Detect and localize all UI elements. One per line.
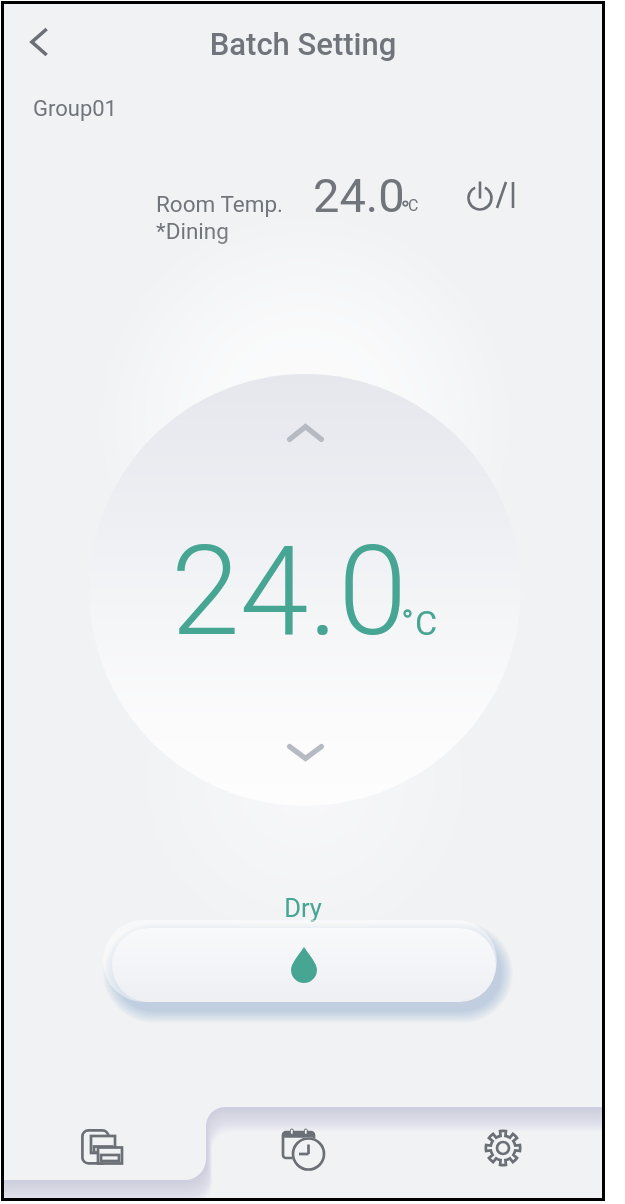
staticText: Group01: [33, 96, 117, 122]
button[interactable]: Devices: [4, 1098, 206, 1198]
staticText: Dry: [4, 893, 602, 923]
button[interactable]: Power on off: [458, 168, 530, 224]
staticText: Batch Setting: [4, 26, 602, 62]
button[interactable]: Schedule: [206, 1098, 405, 1198]
button[interactable]: Decrease temperature: [263, 724, 347, 780]
staticText: C: [415, 603, 438, 643]
staticText: C: [408, 196, 419, 215]
button[interactable]: Dry mode: [112, 928, 496, 1002]
button[interactable]: Settings: [405, 1098, 602, 1198]
button[interactable]: Back: [16, 16, 68, 68]
staticText: Room Temp.: [156, 191, 283, 217]
staticText: 24.0: [313, 168, 405, 223]
button[interactable]: Increase temperature: [263, 405, 347, 461]
staticText: 24.0: [171, 519, 407, 664]
staticText: *Dining: [156, 218, 229, 244]
